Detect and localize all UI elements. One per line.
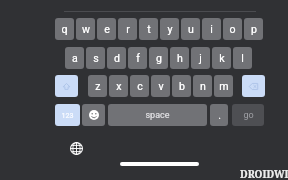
staticText: c bbox=[137, 80, 143, 92]
staticText: q bbox=[61, 23, 68, 35]
staticText: k bbox=[219, 52, 225, 64]
staticText: g bbox=[156, 52, 162, 64]
button[interactable]: x bbox=[109, 75, 128, 97]
staticText: r bbox=[126, 23, 130, 35]
staticText: e bbox=[104, 23, 110, 35]
button[interactable]: c bbox=[130, 75, 149, 97]
staticText: space bbox=[145, 110, 170, 121]
button[interactable]: u bbox=[181, 18, 200, 40]
staticText: h bbox=[177, 52, 183, 64]
staticText: n bbox=[200, 80, 206, 92]
staticText: . bbox=[218, 109, 221, 121]
staticText: v bbox=[158, 80, 164, 92]
staticText: o bbox=[229, 23, 236, 35]
button[interactable]: a bbox=[65, 47, 84, 69]
staticText: u bbox=[188, 23, 194, 35]
staticText: f bbox=[136, 52, 140, 64]
button[interactable]: q bbox=[55, 18, 74, 40]
staticText: go bbox=[243, 110, 254, 121]
button[interactable]: Shift bbox=[55, 75, 78, 97]
staticText: z bbox=[95, 80, 101, 92]
staticText: t bbox=[147, 23, 151, 35]
button[interactable]: k bbox=[212, 47, 231, 69]
button[interactable]: m bbox=[214, 75, 233, 97]
button[interactable]: s bbox=[86, 47, 105, 69]
button[interactable]: y bbox=[160, 18, 179, 40]
staticText: y bbox=[167, 23, 173, 35]
staticText: l bbox=[241, 52, 244, 64]
button[interactable]: . bbox=[210, 104, 228, 126]
button[interactable]: w bbox=[76, 18, 95, 40]
staticText: m bbox=[219, 80, 229, 92]
button[interactable]: l bbox=[233, 47, 252, 69]
button[interactable]: space bbox=[108, 104, 207, 126]
staticText: x bbox=[116, 80, 122, 92]
staticText: s bbox=[93, 52, 99, 64]
button[interactable]: Change language bbox=[64, 136, 88, 160]
staticText: i bbox=[210, 23, 213, 35]
button[interactable]: go bbox=[232, 104, 264, 126]
button[interactable]: b bbox=[172, 75, 191, 97]
button[interactable]: f bbox=[128, 47, 147, 69]
staticText: a bbox=[72, 52, 78, 64]
button[interactable]: Backspace bbox=[242, 75, 265, 97]
button[interactable]: n bbox=[193, 75, 212, 97]
staticText: j bbox=[199, 52, 202, 64]
staticText: b bbox=[179, 80, 185, 92]
staticText: DROIDWI bbox=[240, 167, 288, 180]
staticText: w bbox=[82, 23, 90, 35]
button[interactable]: o bbox=[223, 18, 242, 40]
button[interactable]: Emoji bbox=[82, 104, 105, 126]
button[interactable]: z bbox=[88, 75, 107, 97]
button[interactable]: 123 bbox=[55, 104, 80, 126]
button[interactable]: i bbox=[202, 18, 221, 40]
button[interactable]: v bbox=[151, 75, 170, 97]
button[interactable]: h bbox=[170, 47, 189, 69]
staticText: d bbox=[114, 52, 120, 64]
button[interactable]: j bbox=[191, 47, 210, 69]
staticText: p bbox=[251, 23, 257, 35]
button[interactable]: g bbox=[149, 47, 168, 69]
button[interactable]: e bbox=[97, 18, 116, 40]
button[interactable]: d bbox=[107, 47, 126, 69]
staticText: 123 bbox=[61, 111, 74, 119]
button[interactable]: t bbox=[139, 18, 158, 40]
button[interactable]: p bbox=[244, 18, 263, 40]
button[interactable]: r bbox=[118, 18, 137, 40]
